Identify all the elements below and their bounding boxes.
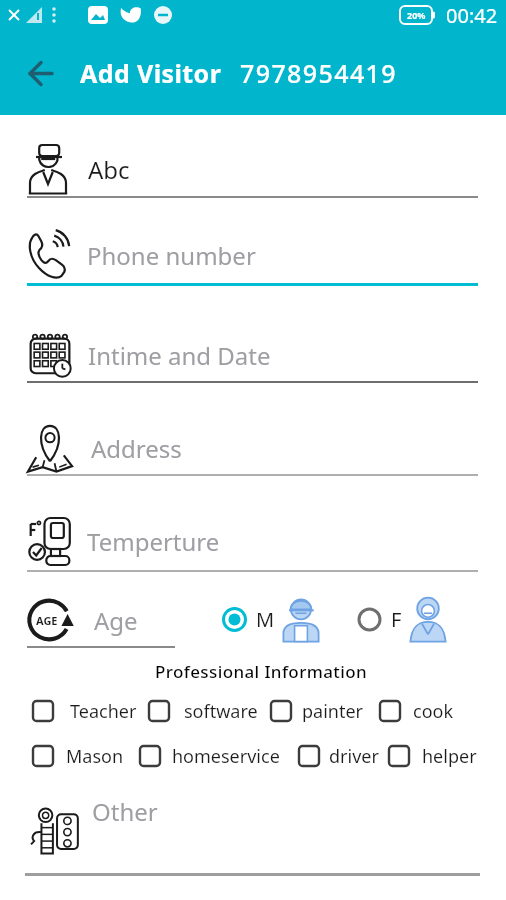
- staticText: Address: [91, 432, 182, 465]
- button[interactable]: Mason: [32, 744, 120, 768]
- button[interactable]: [0, 39, 68, 107]
- staticText: Add Visitor: [80, 56, 222, 90]
- staticText: Other: [92, 795, 158, 828]
- button[interactable]: Other: [28, 795, 480, 861]
- staticText: Temperture: [87, 525, 220, 558]
- staticText: Age: [94, 604, 138, 637]
- staticText: 7978954419: [240, 56, 398, 90]
- staticText: F: [391, 606, 402, 633]
- button[interactable]: Address: [27, 423, 480, 474]
- staticText: Professional Information: [8, 660, 506, 683]
- button[interactable]: Teacher: [32, 699, 144, 723]
- staticText: 00:42: [446, 2, 498, 29]
- button[interactable]: homeservice: [139, 744, 286, 768]
- button[interactable]: cook: [379, 699, 457, 723]
- staticText: cook: [413, 699, 454, 723]
- button[interactable]: helper: [388, 744, 486, 768]
- button[interactable]: software: [148, 699, 268, 723]
- button[interactable]: driver: [298, 744, 393, 768]
- button[interactable]: Phone number: [27, 228, 480, 282]
- button[interactable]: painter: [270, 699, 376, 723]
- staticText: homeservice: [172, 744, 280, 768]
- staticText: Abc: [88, 153, 130, 186]
- button[interactable]: F: [357, 594, 448, 644]
- staticText: Mason: [66, 744, 124, 768]
- staticText: painter: [302, 699, 364, 723]
- staticText: Intime and Date: [88, 339, 271, 372]
- button[interactable]: M: [222, 594, 321, 644]
- button[interactable]: Abc: [28, 143, 480, 195]
- staticText: helper: [422, 744, 477, 768]
- staticText: M: [256, 606, 275, 633]
- staticText: software: [184, 699, 258, 723]
- staticText: Phone number: [87, 239, 256, 272]
- staticText: driver: [329, 744, 379, 768]
- button[interactable]: Intime and Date: [28, 330, 480, 380]
- button[interactable]: AGE: [28, 596, 138, 644]
- button[interactable]: Temperture: [27, 515, 480, 567]
- staticText: 20%: [407, 9, 426, 21]
- staticText: Teacher: [70, 699, 137, 723]
- staticText: AGE: [36, 613, 58, 628]
